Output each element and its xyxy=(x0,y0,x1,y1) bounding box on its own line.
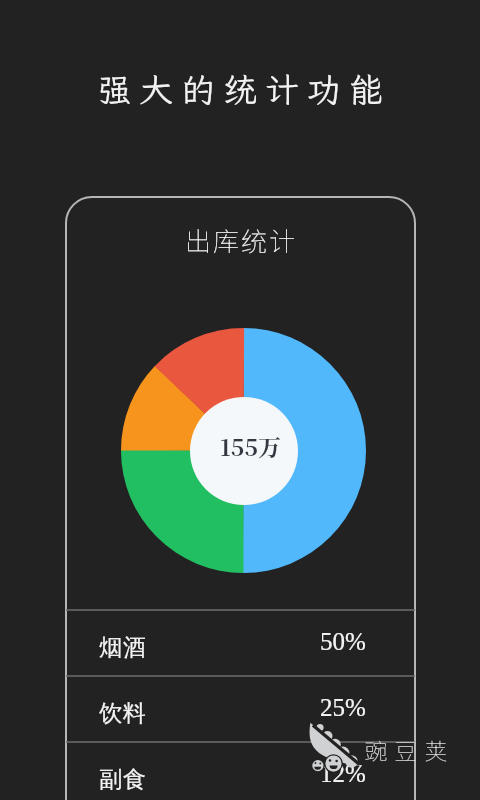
staticText: 豌豆荚 xyxy=(361,733,451,766)
staticText: 出库统计 xyxy=(1,221,480,259)
staticText: 155万 xyxy=(220,430,282,463)
staticText: 12% xyxy=(320,760,366,788)
staticText: 强大的统计功能 xyxy=(4,67,480,112)
button[interactable]: 副食 xyxy=(66,742,415,800)
button[interactable]: 烟酒 xyxy=(66,610,415,676)
staticText: 饮料 xyxy=(99,699,146,728)
staticText: 25% xyxy=(320,694,366,722)
staticText: 50% xyxy=(320,628,366,656)
button[interactable]: 饮料 xyxy=(66,676,415,742)
staticText: 烟酒 xyxy=(99,633,146,662)
staticText: 副食 xyxy=(99,765,146,794)
